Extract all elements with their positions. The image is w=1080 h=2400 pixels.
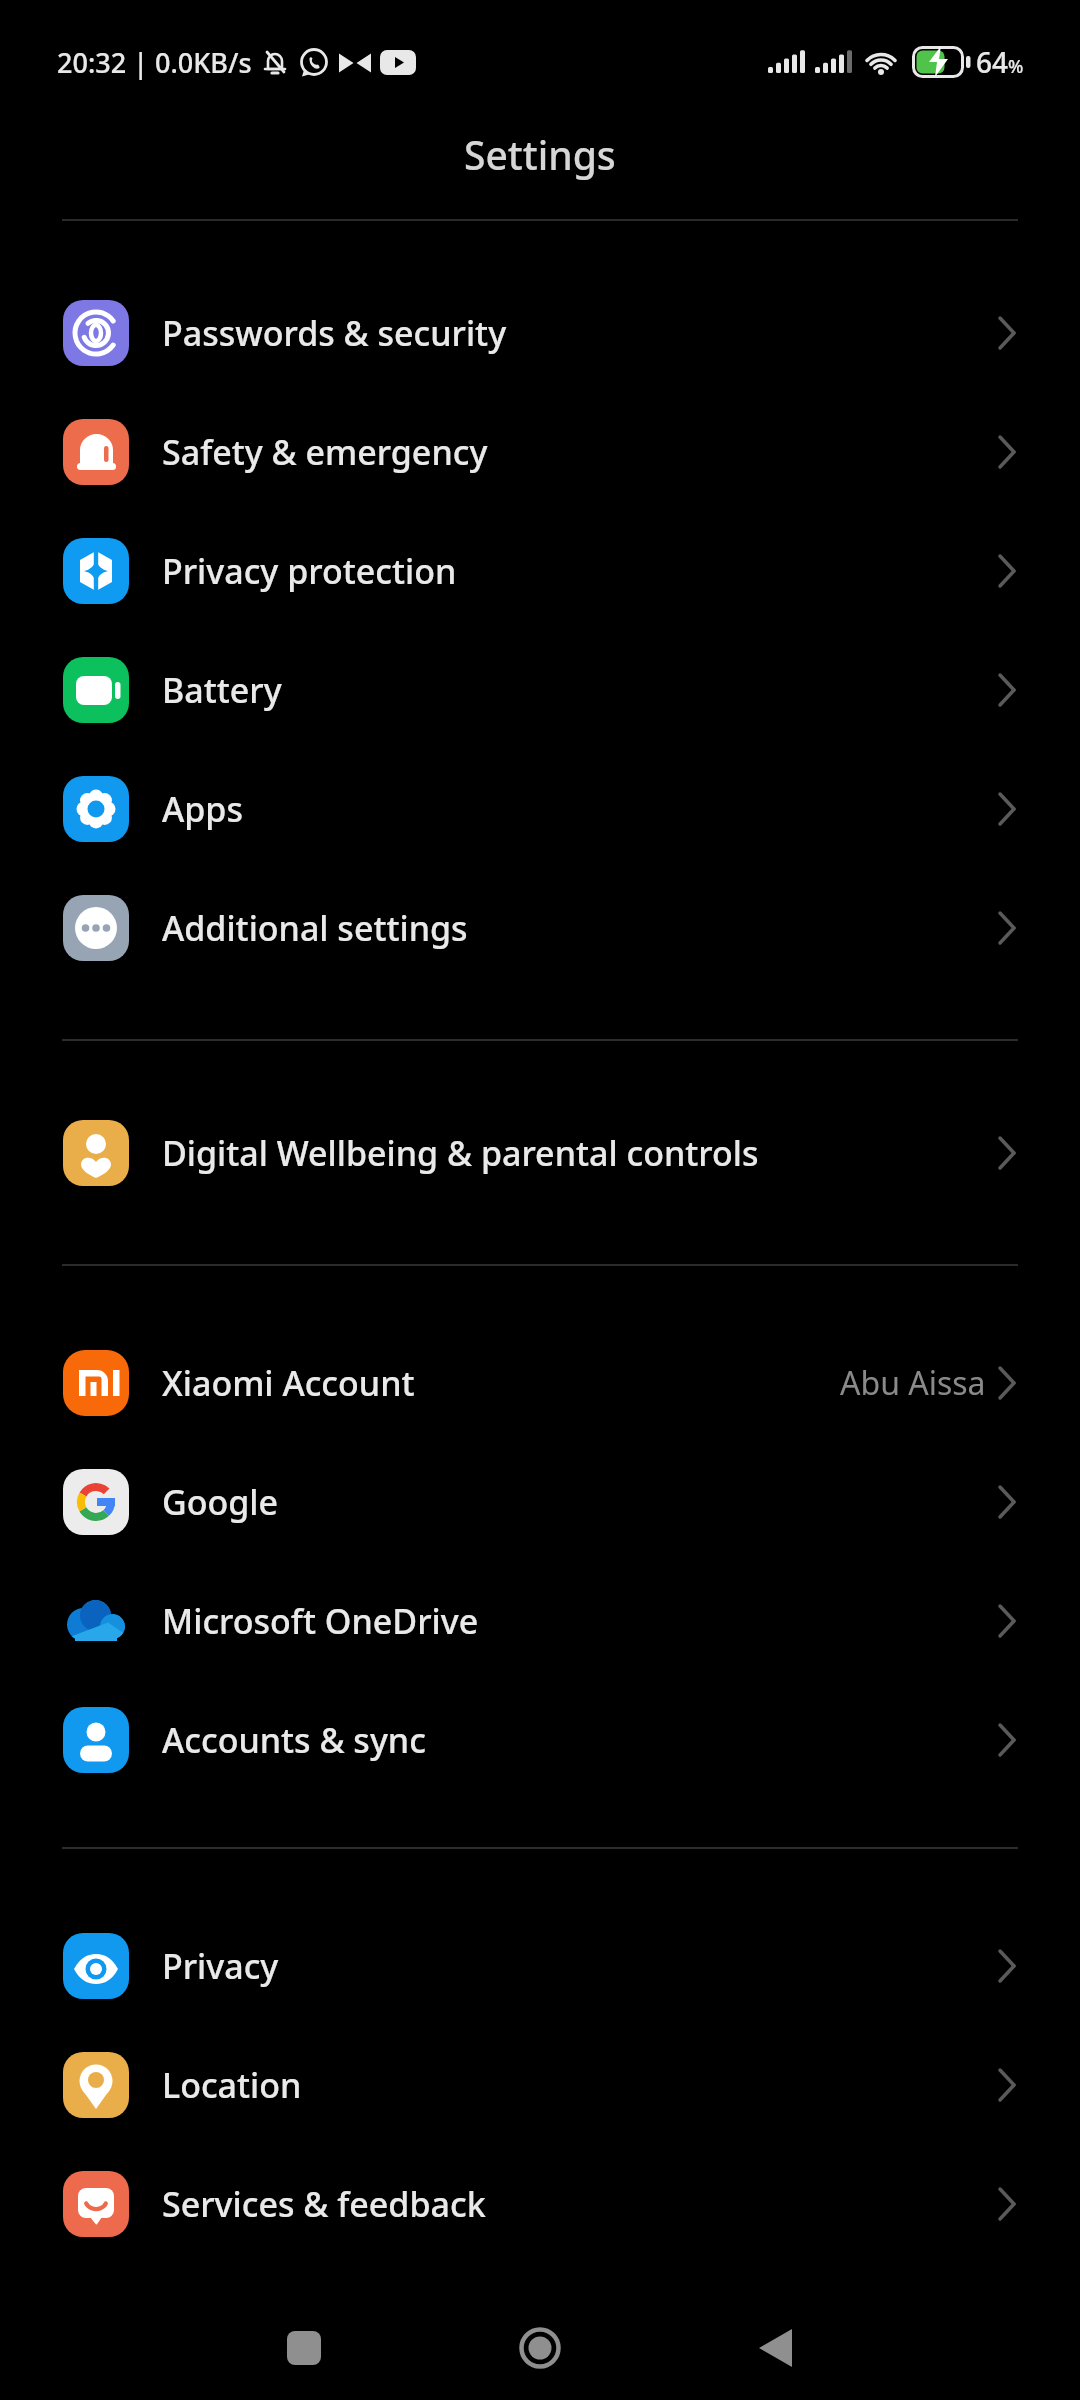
staticText: Safety & emergency xyxy=(162,429,488,475)
staticText: Apps xyxy=(162,786,243,832)
staticText: 64% xyxy=(976,43,1024,81)
staticText: Battery xyxy=(162,667,282,713)
button[interactable]: Passwords & security xyxy=(0,273,1080,392)
button[interactable]: Services & feedback xyxy=(0,2144,1080,2263)
staticText: Abu Aissa xyxy=(840,1361,986,1405)
staticText: Privacy protection xyxy=(162,548,457,594)
staticText: Google xyxy=(162,1479,279,1525)
button[interactable] xyxy=(746,2327,806,2369)
button[interactable]: Location xyxy=(0,2025,1080,2144)
button[interactable]: Digital Wellbeing & parental controls xyxy=(0,1093,1080,1212)
staticText: Additional settings xyxy=(162,905,468,951)
button[interactable]: Xiaomi Account xyxy=(0,1323,1080,1442)
button[interactable] xyxy=(510,2327,570,2369)
button[interactable]: Microsoft OneDrive xyxy=(0,1561,1080,1680)
staticText: Xiaomi Account xyxy=(162,1360,415,1406)
button[interactable]: Accounts & sync xyxy=(0,1680,1080,1799)
staticText: Settings xyxy=(464,128,616,181)
button[interactable]: Privacy xyxy=(0,1906,1080,2025)
button[interactable]: Privacy protection xyxy=(0,511,1080,630)
button[interactable]: Additional settings xyxy=(0,868,1080,987)
button[interactable]: Battery xyxy=(0,630,1080,749)
staticText: 20:32 | 0.0KB/s xyxy=(57,44,252,81)
staticText: Microsoft OneDrive xyxy=(162,1598,479,1644)
staticText: Passwords & security xyxy=(162,310,507,356)
button[interactable]: Google xyxy=(0,1442,1080,1561)
button[interactable]: Apps xyxy=(0,749,1080,868)
staticText: Accounts & sync xyxy=(162,1717,426,1763)
staticText: Location xyxy=(162,2062,302,2108)
button[interactable] xyxy=(274,2327,334,2369)
staticText: Services & feedback xyxy=(162,2181,486,2227)
button[interactable]: Safety & emergency xyxy=(0,392,1080,511)
staticText: Privacy xyxy=(162,1943,279,1989)
staticText: Digital Wellbeing & parental controls xyxy=(162,1130,759,1176)
